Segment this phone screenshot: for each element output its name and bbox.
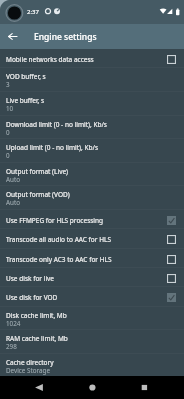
staticText: Engine settings — [34, 31, 97, 43]
staticText: Use disk for VOD — [6, 293, 167, 302]
staticText: 0 — [6, 128, 10, 137]
button[interactable]: VOD buffer, s — [0, 68, 184, 91]
button[interactable]: Use disk for live — [0, 268, 184, 286]
button[interactable]: Mobile networks data access — [0, 49, 184, 67]
staticText: Auto — [6, 198, 20, 207]
staticText: Mobile networks data access — [6, 55, 167, 64]
staticText: Upload limit (0 - no limit), Kb/s — [6, 143, 99, 152]
staticText: Transcode only AC3 to AAC for HLS — [6, 255, 167, 264]
staticText: Download limit (0 - no limit), Kb/s — [6, 120, 107, 129]
button[interactable]: Cache directory — [0, 354, 184, 376]
button[interactable]: Output format (Live) — [0, 163, 184, 186]
button[interactable]: Home — [77, 376, 108, 399]
button[interactable]: Upload limit (0 - no limit), Kb/s — [0, 139, 184, 162]
button[interactable]: Recent apps — [129, 376, 160, 399]
button[interactable]: Transcode only AC3 to AAC for HLS — [0, 249, 184, 267]
staticText: Live buffer, s — [6, 96, 45, 105]
staticText: 298 — [6, 342, 17, 351]
button[interactable]: Use disk for VOD — [0, 287, 184, 305]
staticText: 10 — [6, 104, 14, 113]
staticText: Output format (VOD) — [6, 190, 70, 199]
staticText: Auto — [6, 175, 20, 184]
staticText: RAM cache limit, Mb — [6, 334, 68, 343]
staticText: Device Storage — [6, 366, 51, 375]
button[interactable]: Download limit (0 - no limit), Kb/s — [0, 116, 184, 139]
button[interactable]: Use FFMPEG for HLS processing — [0, 210, 184, 228]
button[interactable]: Transcode all audio to AAC for HLS — [0, 229, 184, 247]
staticText: Cache directory — [6, 358, 54, 367]
staticText: 1024 — [6, 319, 21, 328]
button[interactable]: Live buffer, s — [0, 92, 184, 115]
button[interactable]: Disk cache limit, Mb — [0, 307, 184, 330]
button[interactable]: Navigate up — [0, 24, 24, 49]
staticText: Use disk for live — [6, 274, 167, 283]
staticText: Disk cache limit, Mb — [6, 311, 67, 320]
staticText: Transcode all audio to AAC for HLS — [6, 235, 167, 244]
staticText: Use FFMPEG for HLS processing — [6, 216, 167, 225]
staticText: Output format (Live) — [6, 167, 69, 176]
button[interactable]: RAM cache limit, Mb — [0, 330, 184, 353]
button[interactable]: Back — [27, 376, 58, 399]
button[interactable]: Output format (VOD) — [0, 186, 184, 209]
staticText: 3 — [6, 80, 10, 89]
staticText: 2:37 — [27, 8, 39, 16]
staticText: VOD buffer, s — [6, 72, 46, 81]
staticText: 0 — [6, 151, 10, 160]
